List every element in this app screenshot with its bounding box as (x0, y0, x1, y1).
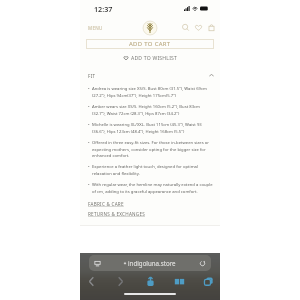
staticText: Andrea is wearing size XS/S. Bust 80cm (… (92, 86, 214, 98)
button[interactable]: FIT (88, 71, 214, 80)
staticText: Offered in three easy-fit sizes. For tho… (92, 140, 214, 158)
staticText: ADD TO WISHLIST (131, 55, 178, 62)
staticText: With regular wear, the hemline may natur… (92, 182, 214, 194)
staticText: FIT (88, 73, 96, 79)
staticText: Michelle is wearing XL/XXL. Bust 115cm (… (92, 122, 214, 134)
button[interactable]: RETURNS & EXCHANGES (88, 211, 146, 217)
button[interactable]: ADD TO CART (86, 39, 214, 49)
button[interactable]: Shopping bag (207, 23, 216, 32)
staticText: indigoluna.store (128, 259, 176, 267)
staticText: ADD TO CART (129, 40, 171, 48)
staticText: • (88, 104, 90, 110)
button[interactable]: FABRIC & CARE (88, 201, 124, 207)
button[interactable]: Indigo Luna home (142, 20, 158, 36)
staticText: • (88, 122, 90, 128)
staticText: Amber wears size XS/S. Height 160cm (5.2… (92, 104, 214, 116)
button[interactable]: indigoluna.store (89, 255, 211, 271)
staticText: 12:37 (94, 4, 113, 14)
button[interactable]: Tabs (202, 275, 215, 288)
staticText: • (88, 86, 90, 92)
staticText: • (88, 164, 90, 170)
button[interactable]: MENU (88, 25, 103, 31)
button[interactable]: Forward (114, 275, 127, 288)
staticText: • (88, 182, 90, 188)
button[interactable]: Back (85, 275, 98, 288)
button[interactable]: Search (181, 23, 190, 32)
button[interactable]: ADD TO WISHLIST (80, 54, 220, 62)
staticText: • (88, 140, 90, 146)
button[interactable]: Share (144, 275, 157, 288)
staticText: Experience a feather light touch, design… (92, 164, 214, 176)
button[interactable]: Wishlist (194, 23, 203, 32)
button[interactable]: Bookmarks (173, 275, 186, 288)
